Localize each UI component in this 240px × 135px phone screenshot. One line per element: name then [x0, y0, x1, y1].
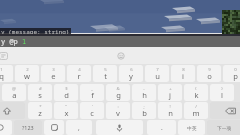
- staticText: r: [77, 71, 81, 81]
- button[interactable]: ": [54, 102, 78, 119]
- staticText: +: [169, 85, 172, 91]
- staticText: k: [194, 90, 199, 100]
- button[interactable]: +: [158, 84, 182, 101]
- staticText: $: [65, 85, 68, 91]
- button[interactable]: Emoji keyboard: [0, 120, 12, 135]
- button[interactable]: 0: [223, 65, 240, 82]
- staticText: _: [91, 85, 93, 91]
- button[interactable]: Clipboard: [0, 52, 8, 60]
- staticText: :: [117, 103, 119, 109]
- button[interactable]: ': [80, 102, 104, 119]
- staticText: ?123: [22, 124, 34, 131]
- button[interactable]: 9: [197, 65, 221, 82]
- staticText: s: [38, 90, 42, 100]
- staticText: ': [92, 103, 93, 109]
- button[interactable]: /: [184, 102, 208, 119]
- staticText: l: [221, 90, 223, 100]
- staticText: (: [195, 85, 197, 91]
- staticText: @: [12, 85, 16, 91]
- staticText: o: [207, 71, 212, 81]
- button[interactable]: Emoji: [117, 52, 125, 60]
- button[interactable]: Backspace: [210, 102, 240, 119]
- button[interactable]: #: [28, 84, 52, 101]
- button[interactable]: 下一项: [207, 120, 240, 135]
- button[interactable]: _: [80, 84, 104, 101]
- staticText: ): [221, 85, 223, 91]
- staticText: ": [65, 103, 67, 109]
- staticText: f: [91, 90, 94, 100]
- staticText: 1: [22, 37, 27, 47]
- staticText: j: [169, 90, 171, 100]
- button[interactable]: ,: [66, 120, 92, 135]
- button[interactable]: &: [106, 84, 130, 101]
- button[interactable]: ;: [132, 102, 156, 119]
- button[interactable]: (: [184, 84, 208, 101]
- button[interactable]: 5: [93, 65, 117, 82]
- staticText: 0: [234, 66, 237, 72]
- staticText: i: [182, 71, 184, 81]
- staticText: *: [39, 103, 42, 109]
- staticText: 3: [52, 66, 55, 72]
- staticText: b: [142, 108, 147, 118]
- button[interactable]: 3: [41, 65, 65, 82]
- staticText: q: [0, 71, 4, 81]
- staticText: t: [104, 71, 107, 81]
- staticText: 下一项: [217, 125, 232, 131]
- button[interactable]: 6: [119, 65, 143, 82]
- staticText: a: [12, 90, 17, 100]
- button[interactable]: 4: [67, 65, 91, 82]
- button[interactable]: !: [158, 102, 182, 119]
- button[interactable]: 2: [15, 65, 39, 82]
- staticText: 1: [0, 66, 3, 72]
- button[interactable]: @: [2, 84, 26, 101]
- staticText: 2: [26, 66, 29, 72]
- button[interactable]: :: [106, 102, 130, 119]
- staticText: m: [192, 108, 200, 118]
- button[interactable]: 1: [0, 65, 13, 82]
- button[interactable]: ?123: [14, 120, 42, 135]
- button[interactable]: Voice input: [96, 120, 143, 135]
- button[interactable]: -: [132, 84, 156, 101]
- staticText: /: [195, 103, 197, 109]
- staticText: 5: [104, 66, 107, 72]
- staticText: ;: [143, 103, 145, 109]
- staticText: y: [129, 71, 133, 81]
- staticText: 8: [182, 66, 185, 72]
- staticText: -: [143, 85, 145, 91]
- staticText: 7: [156, 66, 159, 72]
- button[interactable]: Shift: [0, 102, 25, 119]
- staticText: #: [39, 85, 42, 91]
- button[interactable]: ): [210, 84, 234, 101]
- staticText: &: [116, 85, 120, 91]
- button[interactable]: 中英: [178, 120, 205, 135]
- staticText: e: [51, 71, 56, 81]
- button[interactable]: 8: [171, 65, 195, 82]
- staticText: w: [24, 71, 30, 81]
- staticText: y @p: [1, 37, 22, 47]
- staticText: .: [161, 123, 163, 132]
- button[interactable]: $: [54, 84, 78, 101]
- staticText: ,: [78, 123, 80, 132]
- staticText: z: [38, 108, 42, 118]
- staticText: y (message: string): [1, 28, 70, 35]
- staticText: 4: [78, 66, 81, 72]
- staticText: 6: [130, 66, 133, 72]
- button[interactable]: 7: [145, 65, 169, 82]
- staticText: v: [116, 108, 120, 118]
- staticText: n: [168, 108, 173, 118]
- staticText: h: [142, 90, 147, 100]
- staticText: d: [64, 90, 69, 100]
- staticText: x: [64, 108, 69, 118]
- staticText: 9: [208, 66, 211, 72]
- button[interactable]: .: [147, 120, 176, 135]
- staticText: g: [116, 90, 121, 100]
- button[interactable]: Stickers: [44, 120, 64, 135]
- staticText: p: [233, 71, 238, 81]
- staticText: !: [169, 103, 171, 109]
- staticText: u: [155, 71, 160, 81]
- button[interactable]: *: [28, 102, 52, 119]
- staticText: 中英: [187, 125, 197, 131]
- staticText: c: [90, 108, 94, 118]
